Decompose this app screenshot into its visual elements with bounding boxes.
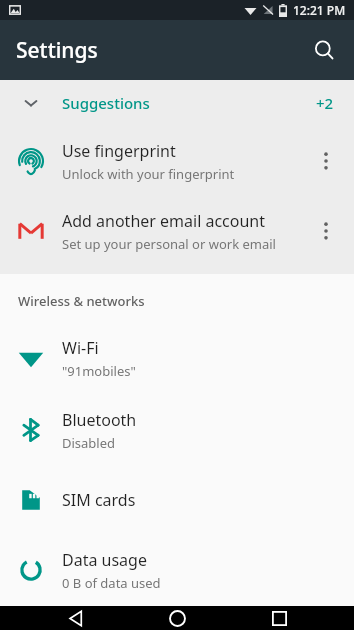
button[interactable]: Recent apps bbox=[252, 606, 306, 630]
staticText: Bluetooth bbox=[62, 409, 137, 431]
button[interactable]: Add another email account bbox=[0, 196, 354, 266]
staticText: Unlock with your fingerprint bbox=[62, 165, 235, 183]
staticText: 0 B of data used bbox=[62, 574, 161, 592]
staticText: Set up your personal or work email bbox=[62, 235, 276, 253]
staticText: Use fingerprint bbox=[62, 140, 176, 162]
button[interactable]: More options bbox=[304, 139, 348, 183]
button[interactable]: Back bbox=[48, 606, 102, 630]
staticText: Disabled bbox=[62, 434, 116, 452]
staticText: "91mobiles" bbox=[62, 362, 136, 380]
button[interactable]: SIM cards bbox=[0, 466, 354, 534]
staticText: Suggestions bbox=[62, 93, 150, 113]
staticText: SIM cards bbox=[62, 489, 136, 511]
button[interactable]: Wi-Fi bbox=[0, 322, 354, 394]
button[interactable]: Suggestions bbox=[0, 80, 354, 126]
button[interactable]: More options bbox=[304, 209, 348, 253]
button[interactable]: Search bbox=[302, 28, 346, 72]
staticText: Settings bbox=[16, 36, 98, 65]
staticText: Add another email account bbox=[62, 210, 266, 232]
button[interactable]: Home bbox=[150, 606, 204, 630]
staticText: +2 bbox=[316, 93, 334, 113]
staticText: Data usage bbox=[62, 549, 147, 571]
staticText: 12:21 PM bbox=[293, 2, 346, 18]
staticText: Wireless & networks bbox=[18, 292, 145, 310]
button[interactable]: Data usage bbox=[0, 534, 354, 606]
staticText: Wi-Fi bbox=[62, 337, 99, 359]
button[interactable]: Use fingerprint bbox=[0, 126, 354, 196]
button[interactable]: Bluetooth bbox=[0, 394, 354, 466]
